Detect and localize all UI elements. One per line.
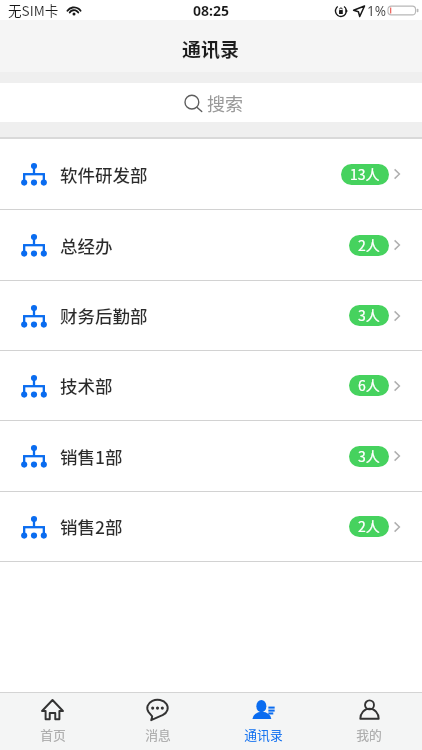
button[interactable]: 搜索 <box>0 83 422 122</box>
staticText: 6人 <box>358 375 380 395</box>
button[interactable]: 总经办 <box>0 210 422 280</box>
staticText: 3人 <box>358 305 380 325</box>
staticText: 08:25 <box>193 1 229 20</box>
button[interactable]: Home <box>0 693 105 750</box>
staticText: 财务后勤部 <box>60 303 148 328</box>
staticText: 销售1部 <box>60 444 123 469</box>
staticText: 技术部 <box>60 373 113 398</box>
staticText: 销售2部 <box>60 514 123 539</box>
staticText: 1% <box>367 1 387 20</box>
button[interactable]: Messages <box>105 693 210 750</box>
staticText: 通讯录 <box>182 35 240 63</box>
staticText: 首页 <box>40 725 66 744</box>
button[interactable]: 销售1部 <box>0 421 422 491</box>
staticText: 13人 <box>350 164 380 184</box>
staticText: 通讯录 <box>244 725 283 744</box>
button[interactable]: Profile <box>316 693 422 750</box>
staticText: 搜索 <box>207 90 243 116</box>
staticText: 无SIM卡 <box>8 0 59 20</box>
staticText: 消息 <box>145 725 171 744</box>
staticText: 我的 <box>356 725 382 744</box>
staticText: 总经办 <box>60 233 113 258</box>
button[interactable]: Contacts <box>210 693 316 750</box>
staticText: 2人 <box>358 516 380 536</box>
button[interactable]: 软件研发部 <box>0 139 422 209</box>
staticText: 3人 <box>358 446 380 466</box>
button[interactable]: 销售2部 <box>0 492 422 561</box>
staticText: 2人 <box>358 235 380 255</box>
button[interactable]: 技术部 <box>0 351 422 420</box>
button[interactable]: 财务后勤部 <box>0 281 422 350</box>
staticText: 软件研发部 <box>60 162 148 187</box>
